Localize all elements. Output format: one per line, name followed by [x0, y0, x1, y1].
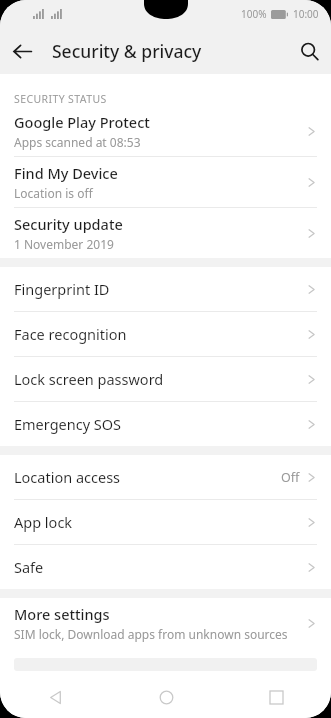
staticText: 1 November 2019 — [14, 236, 114, 252]
staticText: Security & privacy — [52, 39, 202, 63]
staticText: Emergency SOS — [14, 414, 306, 434]
staticText: SIM lock, Download apps from unknown sou… — [14, 626, 288, 642]
button[interactable]: Find My Device — [0, 157, 331, 207]
button[interactable]: App lock — [0, 500, 331, 544]
button[interactable]: Security update — [0, 208, 331, 258]
staticText: Off — [281, 469, 300, 486]
staticText: App lock — [14, 512, 306, 532]
button[interactable]: Fingerprint ID — [0, 267, 331, 311]
button[interactable]: More settings — [0, 598, 331, 648]
staticText: Security update — [14, 214, 123, 234]
staticText: Find My Device — [14, 163, 118, 183]
staticText: Lock screen password — [14, 369, 306, 389]
button[interactable]: Home — [111, 677, 221, 718]
staticText: Face recognition — [14, 324, 306, 344]
staticText: Location is off — [14, 185, 93, 201]
staticText: SECURITY STATUS — [14, 92, 107, 106]
staticText: 100% — [241, 7, 267, 21]
button[interactable]: Google Play Protect — [0, 106, 331, 156]
button[interactable]: Location access — [0, 455, 331, 499]
button[interactable]: Search — [287, 29, 331, 73]
button[interactable]: Face recognition — [0, 312, 331, 356]
button[interactable]: Back — [0, 29, 44, 73]
staticText: Google Play Protect — [14, 112, 150, 132]
staticText: Fingerprint ID — [14, 279, 306, 299]
button[interactable]: Emergency SOS — [0, 402, 331, 446]
staticText: Apps scanned at 08:53 — [14, 134, 141, 150]
staticText: 10:00 — [293, 7, 319, 21]
staticText: Safe — [14, 557, 306, 577]
button[interactable]: Back — [0, 677, 111, 718]
staticText: More settings — [14, 604, 110, 624]
staticText: Location access — [14, 467, 281, 487]
button[interactable]: Safe — [0, 545, 331, 589]
button[interactable]: Lock screen password — [0, 357, 331, 401]
button[interactable]: Recent apps — [221, 677, 331, 718]
